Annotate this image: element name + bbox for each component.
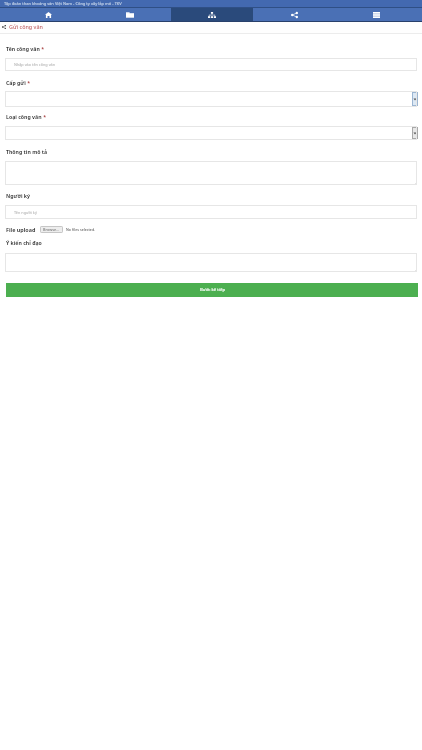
staticText: * — [26, 79, 31, 86]
button[interactable]: Gửi công văn — [0, 22, 422, 34]
staticText: * — [42, 113, 47, 120]
staticText: No files selected. — [66, 227, 96, 232]
staticText: Ý kiến chỉ đạo — [6, 239, 42, 246]
staticText: Cấp gửi — [6, 79, 26, 86]
button[interactable]: Menu — [335, 8, 417, 21]
button[interactable] — [5, 161, 417, 185]
button[interactable] — [5, 91, 417, 107]
button[interactable]: Documents — [89, 8, 171, 21]
button[interactable]: Share — [253, 8, 335, 21]
staticText: * — [40, 45, 45, 52]
staticText: Tập đoàn than khoáng sản Việt Nam - Công… — [4, 1, 122, 6]
staticText: Gửi công văn — [9, 23, 43, 30]
staticText: Người ký — [6, 192, 31, 199]
button[interactable]: Browse... — [40, 226, 63, 233]
staticText: Tên người ký — [14, 210, 37, 215]
staticText: Bước kế tiếp — [200, 286, 226, 292]
button[interactable]: Bước kế tiếp — [6, 283, 418, 297]
button[interactable] — [5, 126, 417, 140]
button[interactable]: Tên người ký — [5, 205, 417, 219]
staticText: Loại công văn — [6, 113, 42, 120]
button[interactable] — [5, 253, 417, 272]
button[interactable]: Nhập vào tên công văn — [5, 58, 417, 71]
staticText: Tên công văn — [6, 45, 40, 52]
staticText: File upload — [6, 226, 36, 233]
staticText: Nhập vào tên công văn — [14, 62, 56, 67]
button[interactable]: Home — [7, 8, 89, 21]
staticText: Browse... — [43, 227, 60, 232]
button[interactable]: Organization chart — [171, 8, 253, 21]
staticText: Thông tin mô tả — [6, 148, 48, 155]
